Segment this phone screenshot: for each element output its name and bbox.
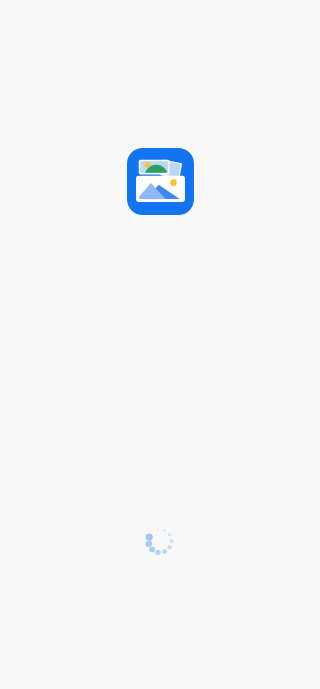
other: Loading bbox=[144, 525, 176, 557]
button[interactable]: Gallery app icon bbox=[127, 148, 194, 215]
